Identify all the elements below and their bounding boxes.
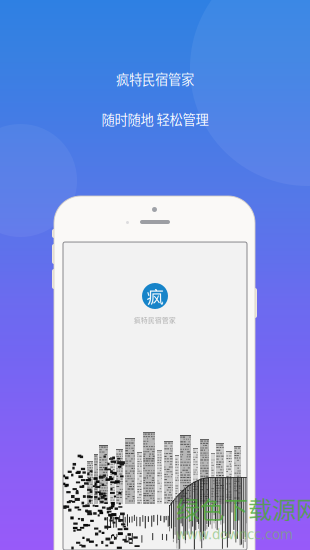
staticText: 疯特民宿管家 [134, 315, 176, 325]
staticText: 疯 [146, 283, 163, 309]
staticText: 疯特民宿管家 [116, 69, 194, 88]
staticText: www.downcc.com [176, 527, 293, 542]
staticText: 随时随地 轻松管理 [101, 109, 208, 129]
staticText: 绿色下载源网 [176, 491, 310, 526]
